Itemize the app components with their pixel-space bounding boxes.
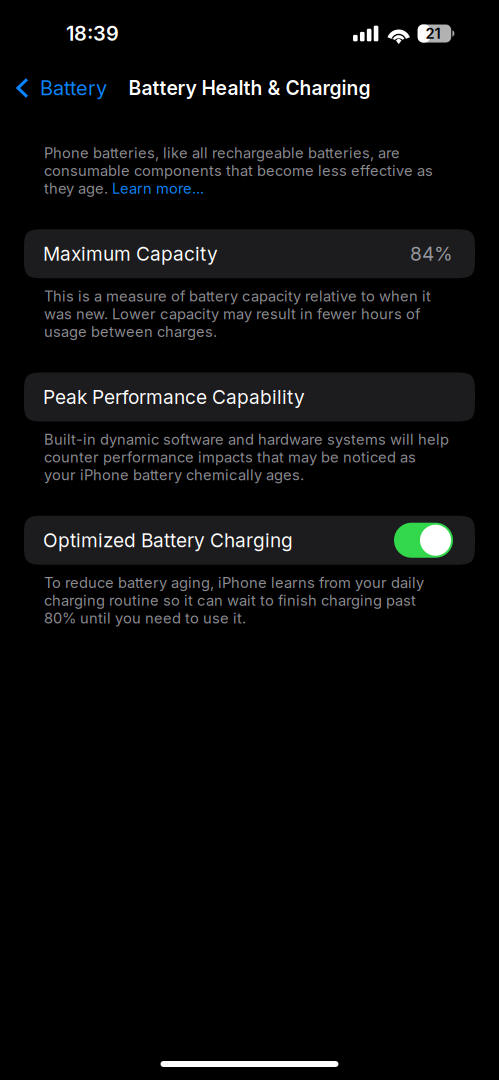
staticText: Maximum Capacity	[43, 242, 218, 265]
staticText: 21	[425, 25, 440, 42]
staticText: 18:39	[66, 21, 119, 46]
button[interactable]: Optimized Battery Charging	[0, 516, 499, 565]
staticText: Optimized Battery Charging	[43, 529, 293, 552]
staticText: Built-in dynamic software and hardware s…	[44, 430, 449, 484]
staticText: Peak Performance Capability	[43, 385, 305, 408]
staticText: they age.	[44, 179, 112, 197]
staticText: Learn more...	[112, 179, 204, 197]
button[interactable]: Battery	[0, 69, 117, 107]
button[interactable]: Peak Performance Capability	[0, 372, 499, 421]
staticText: Phone batteries, like all rechargeable b…	[44, 144, 400, 162]
staticText: consumable components that become less e…	[44, 162, 433, 179]
staticText: This is a measure of battery capacity re…	[44, 287, 431, 340]
staticText: Battery	[40, 76, 107, 100]
staticText: To reduce battery aging, iPhone learns f…	[44, 574, 424, 627]
staticText: Battery Health & Charging	[128, 76, 370, 100]
button[interactable]: Maximum Capacity	[0, 229, 499, 278]
staticText: 84%	[410, 242, 453, 265]
button[interactable]: Learn more...	[112, 179, 204, 197]
